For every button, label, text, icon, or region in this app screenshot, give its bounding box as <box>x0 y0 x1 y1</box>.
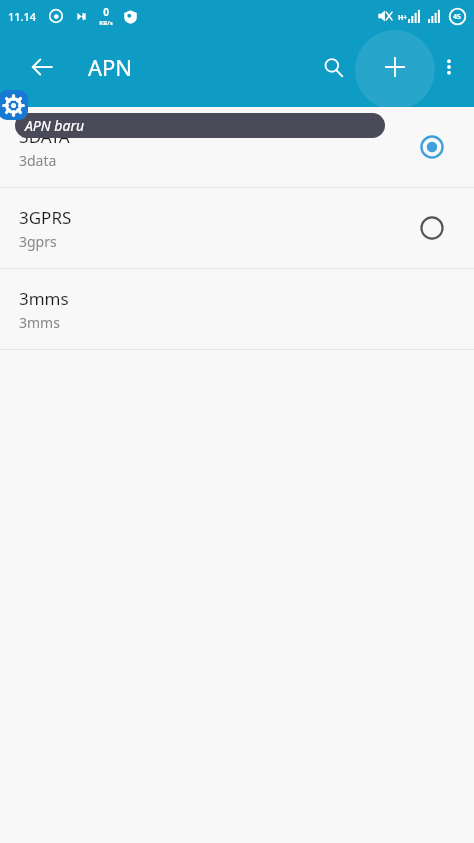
button[interactable]: Search <box>311 45 355 89</box>
button[interactable]: More options <box>429 47 469 87</box>
staticText: H+ <box>398 13 408 23</box>
staticText: 3GPRS <box>19 206 72 229</box>
button[interactable]: 3GPRS <box>0 188 474 268</box>
staticText: 11.14 <box>8 9 37 24</box>
staticText: 3data <box>19 151 57 170</box>
button[interactable]: Add APN <box>373 45 417 89</box>
button[interactable]: 3mms <box>0 269 474 349</box>
button[interactable]: Settings <box>0 90 28 120</box>
button[interactable]: Select 3GPRS <box>412 208 452 248</box>
button[interactable]: Back <box>20 45 64 89</box>
staticText: 45 <box>453 12 462 22</box>
staticText: APN baru <box>25 116 85 135</box>
button[interactable]: 3DATA <box>0 107 474 187</box>
staticText: 3mms <box>19 287 69 310</box>
button[interactable]: Select 3DATA <box>412 127 452 167</box>
staticText: KB/s <box>99 19 113 27</box>
staticText: APN <box>88 52 133 82</box>
staticText: 3gprs <box>19 232 57 251</box>
staticText: 3mms <box>19 313 60 332</box>
staticText: 0 <box>103 5 109 19</box>
staticText: 3DATA <box>19 125 70 148</box>
